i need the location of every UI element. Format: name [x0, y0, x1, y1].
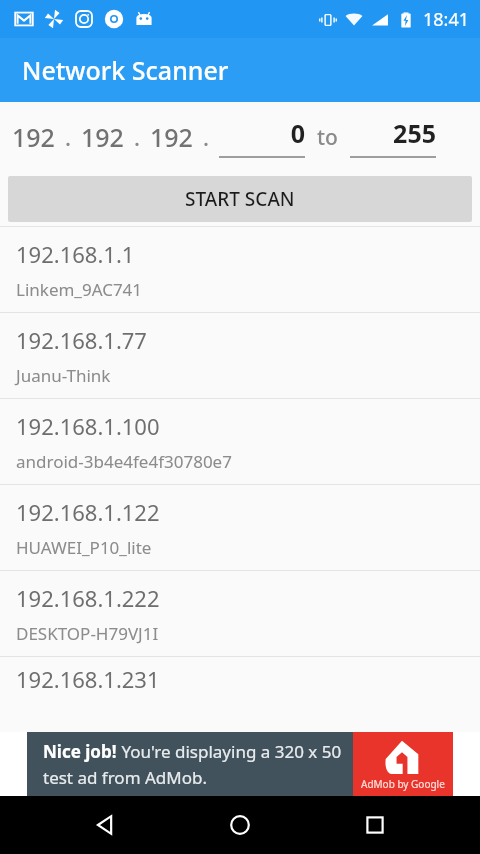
staticText: . — [203, 122, 209, 152]
staticText: Network Scanner — [22, 53, 229, 87]
staticText: START SCAN — [185, 186, 295, 212]
staticText: android-3b4e4fe4f30780e7 — [16, 450, 232, 473]
staticText: test ad from AdMob. — [43, 766, 207, 789]
button[interactable]: Back — [75, 796, 135, 854]
button[interactable]: 192.168.1.1 — [0, 227, 480, 312]
staticText: . — [134, 122, 140, 152]
button[interactable]: 0 — [219, 116, 305, 158]
staticText: 192.168.1.100 — [16, 411, 160, 441]
staticText: 192.168.1.77 — [16, 325, 147, 355]
staticText: 192 — [81, 120, 124, 154]
staticText: HUAWEI_P10_lite — [16, 536, 152, 559]
staticText: Linkem_9AC741 — [16, 278, 143, 301]
staticText: 192.168.1.231 — [16, 664, 160, 694]
button[interactable]: Home — [210, 796, 270, 854]
staticText: Juanu-Think — [16, 364, 111, 387]
button[interactable]: 255 — [350, 116, 436, 158]
button[interactable]: 192.168.1.222 — [0, 571, 480, 656]
button[interactable]: 192.168.1.122 — [0, 485, 480, 570]
button[interactable]: Nice job! — [27, 732, 453, 796]
button[interactable]: 192.168.1.231 — [0, 657, 480, 732]
staticText: 0 — [219, 116, 305, 150]
button[interactable]: START SCAN — [8, 176, 472, 222]
staticText: . — [65, 122, 71, 152]
button[interactable]: Recents — [345, 796, 405, 854]
staticText: 192 — [150, 120, 193, 154]
staticText: 192 — [12, 120, 55, 154]
staticText: 192.168.1.1 — [16, 239, 135, 269]
staticText: 18:41 — [423, 7, 470, 32]
button[interactable]: 192.168.1.100 — [0, 399, 480, 484]
staticText: 192.168.1.122 — [16, 497, 160, 527]
staticText: AdMob by Google — [361, 777, 445, 791]
staticText: 255 — [350, 116, 436, 150]
staticText: 192.168.1.222 — [16, 583, 160, 613]
staticText: Nice job! — [43, 740, 117, 763]
button[interactable]: 192.168.1.77 — [0, 313, 480, 398]
staticText: DESKTOP-H79VJ1I — [16, 622, 159, 645]
staticText: to — [317, 123, 338, 152]
staticText: You're displaying a 320 x 50 — [117, 740, 342, 763]
